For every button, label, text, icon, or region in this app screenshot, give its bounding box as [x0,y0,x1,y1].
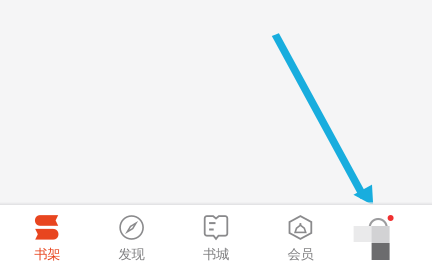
button[interactable]: 我的 [343,215,427,276]
button[interactable]: 书架 [5,215,89,276]
staticText: 书城 [203,246,229,262]
button[interactable]: 会员 [258,215,343,276]
staticText: 会员 [287,246,313,262]
staticText: 发现 [119,246,145,262]
button[interactable]: 发现 [89,215,174,276]
button[interactable]: 书城 [174,215,258,276]
staticText: 书架 [34,246,60,262]
